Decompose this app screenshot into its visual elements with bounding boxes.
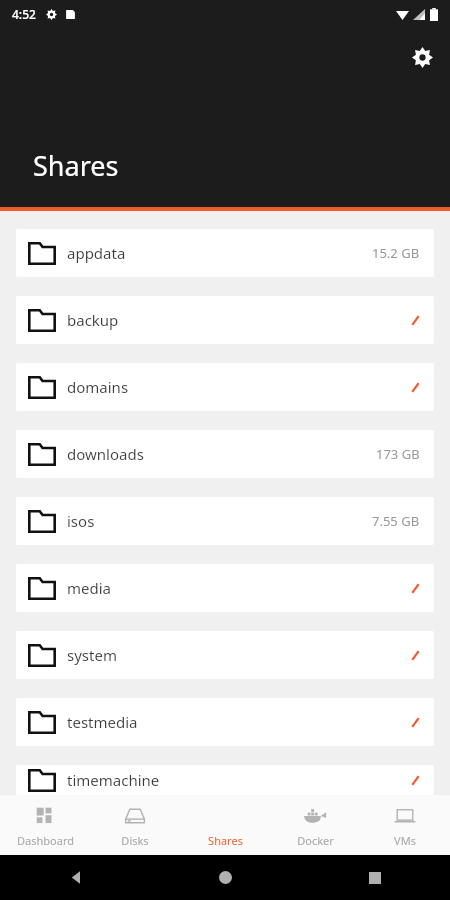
staticText: domains [67, 377, 129, 397]
button[interactable]: VMs [360, 795, 450, 855]
button[interactable]: Recents [300, 855, 450, 900]
button[interactable]: Settings [402, 37, 442, 77]
button[interactable]: backup [16, 296, 434, 344]
staticText: Shares [208, 833, 243, 848]
button[interactable]: appdata [16, 229, 434, 277]
staticText: timemachine [67, 770, 160, 790]
staticText: downloads [67, 444, 144, 464]
button[interactable]: media [16, 564, 434, 612]
staticText: system [67, 645, 117, 665]
staticText: backup [67, 310, 119, 330]
staticText: media [67, 578, 111, 598]
staticText: 7.55 GB [372, 512, 420, 530]
button[interactable]: timemachine [16, 765, 434, 795]
staticText: 4:52 [12, 6, 36, 22]
staticText: 173 GB [376, 445, 420, 463]
staticText: VMs [394, 833, 416, 848]
staticText: Shares [33, 147, 119, 184]
button[interactable]: Back [0, 855, 150, 900]
button[interactable]: domains [16, 363, 434, 411]
staticText: isos [67, 511, 95, 531]
button[interactable]: Disks [90, 795, 180, 855]
button[interactable]: testmedia [16, 698, 434, 746]
button[interactable]: isos [16, 497, 434, 545]
staticText: Dashboard [17, 833, 74, 848]
button[interactable]: Home [150, 855, 300, 900]
button[interactable]: Docker [270, 795, 360, 855]
staticText: Disks [121, 833, 149, 848]
button[interactable]: downloads [16, 430, 434, 478]
staticText: appdata [67, 243, 126, 263]
staticText: testmedia [67, 712, 138, 732]
button[interactable]: system [16, 631, 434, 679]
staticText: 15.2 GB [372, 244, 420, 262]
staticText: Docker [297, 833, 334, 848]
button[interactable]: Dashboard [0, 795, 90, 855]
button[interactable]: Shares [180, 795, 270, 855]
